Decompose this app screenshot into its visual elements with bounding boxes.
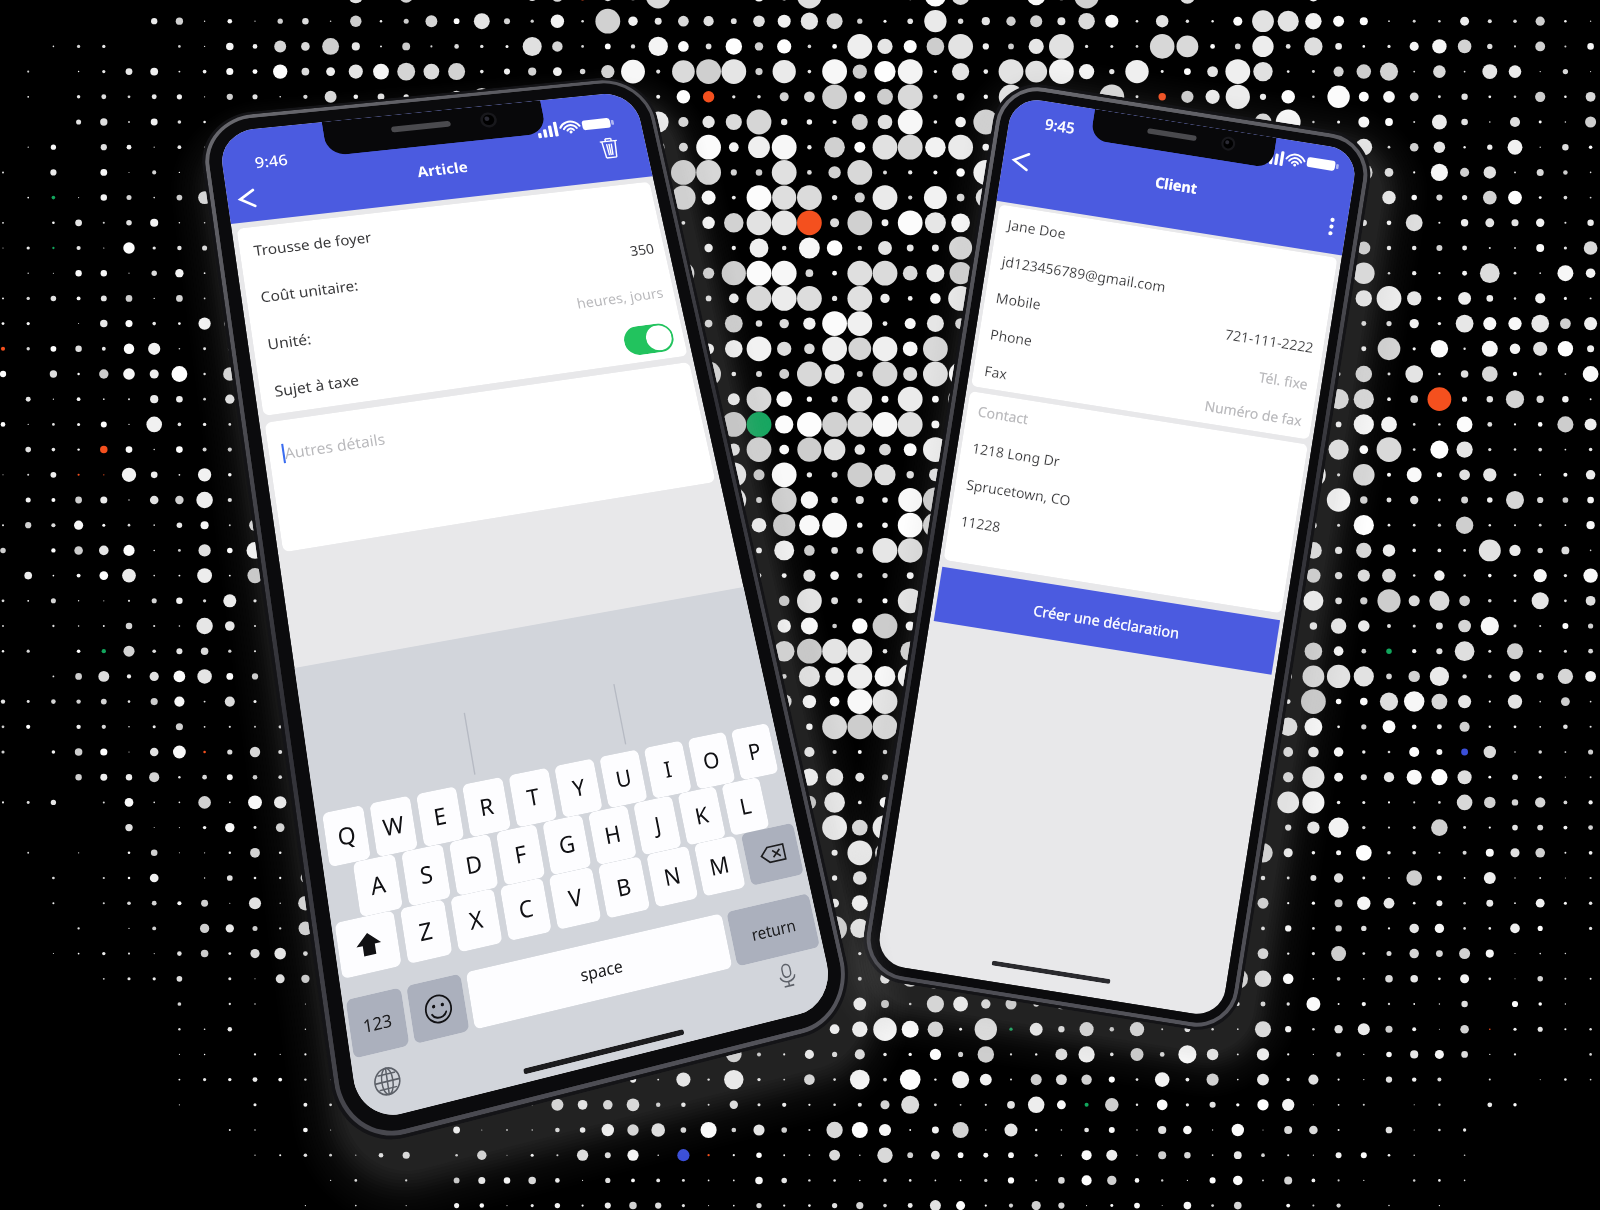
button[interactable]: O <box>687 732 736 790</box>
button[interactable]: Back <box>225 179 269 219</box>
staticText: Numéro de fax <box>1203 396 1304 430</box>
button[interactable]: Delete <box>590 130 630 165</box>
staticText: W <box>380 808 407 844</box>
button[interactable]: E <box>416 786 464 847</box>
staticText: Z <box>417 914 436 949</box>
staticText: Article <box>415 156 470 181</box>
button[interactable]: U <box>599 749 648 808</box>
staticText: A <box>368 867 388 903</box>
staticText: H <box>602 818 624 852</box>
staticText: G <box>556 827 578 862</box>
button[interactable]: L <box>721 777 770 836</box>
button[interactable]: Change keyboard <box>365 1057 409 1106</box>
staticText: Autres détails <box>283 428 387 463</box>
button[interactable]: T <box>508 767 557 828</box>
staticText: V <box>566 881 585 915</box>
staticText: X <box>467 902 486 938</box>
staticText: Sprucetown, CO <box>965 475 1073 510</box>
staticText: Client <box>1154 171 1199 198</box>
button[interactable]: R <box>462 777 511 838</box>
staticText: space <box>578 954 625 986</box>
staticText: Fax <box>983 361 1009 383</box>
staticText: U <box>613 762 635 795</box>
button[interactable]: V <box>548 867 601 930</box>
button[interactable]: W <box>369 795 418 857</box>
button[interactable]: B <box>598 856 650 919</box>
staticText: 9:46 <box>253 149 289 173</box>
staticText: 123 <box>361 1008 394 1038</box>
button[interactable]: G <box>542 814 592 875</box>
staticText: E <box>431 800 449 834</box>
staticText: F <box>512 838 529 871</box>
button[interactable]: Back <box>1000 141 1041 181</box>
staticText: Unité: <box>266 328 313 353</box>
button[interactable]: X <box>450 888 503 953</box>
staticText: Mobile <box>995 288 1042 314</box>
staticText: Contact <box>977 401 1030 428</box>
button[interactable]: 123 <box>345 987 409 1059</box>
button[interactable]: J <box>633 795 682 855</box>
staticText: Trousse de foyer <box>252 227 373 260</box>
staticText: 350 <box>628 238 656 259</box>
staticText: 11228 <box>959 511 1003 536</box>
button[interactable]: I <box>644 740 692 799</box>
button[interactable]: Z <box>400 899 453 964</box>
staticText: Q <box>335 818 359 854</box>
staticText: Sujet à taxe <box>273 369 361 401</box>
staticText: Coût unitaire: <box>259 275 360 306</box>
staticText: J <box>652 809 664 841</box>
button[interactable]: More options <box>1315 208 1348 246</box>
button[interactable]: Créer une déclaration <box>934 567 1280 675</box>
staticText: 9:45 <box>1043 113 1076 138</box>
staticText: heures, jours <box>575 282 666 312</box>
staticText: D <box>463 847 485 882</box>
button[interactable]: Q <box>322 805 371 867</box>
staticText: C <box>516 891 536 927</box>
staticText: T <box>524 781 542 814</box>
button[interactable]: K <box>677 786 726 846</box>
button[interactable]: Taxable toggle <box>621 322 676 357</box>
staticText: jd123456789@gmail.com <box>1000 251 1167 296</box>
staticText: Tél. fixe <box>1258 367 1310 394</box>
button[interactable]: Dictate <box>768 954 807 997</box>
button[interactable]: S <box>401 844 451 907</box>
staticText: return <box>749 913 798 945</box>
staticText: Phone <box>989 324 1034 350</box>
button[interactable]: return <box>726 893 820 967</box>
staticText: R <box>477 790 497 824</box>
button[interactable]: F <box>496 824 545 886</box>
button[interactable]: Y <box>554 758 603 818</box>
staticText: M <box>707 848 733 883</box>
button[interactable]: A <box>353 854 403 917</box>
staticText: Y <box>570 771 588 804</box>
staticText: B <box>614 870 634 904</box>
staticText: Créer une déclaration <box>1032 600 1181 643</box>
button[interactable]: space <box>466 913 732 1030</box>
button[interactable]: C <box>500 877 552 941</box>
staticText: I <box>661 754 675 785</box>
staticText: 1218 Long Dr <box>971 438 1062 471</box>
staticText: Jane Doe <box>1006 215 1067 243</box>
button[interactable]: P <box>731 723 779 780</box>
staticText: O <box>700 744 723 777</box>
staticText: 721-111-2222 <box>1224 324 1316 357</box>
staticText: K <box>692 799 711 832</box>
button[interactable]: Shift <box>334 910 402 979</box>
button[interactable]: Emoji <box>406 973 470 1044</box>
staticText: P <box>745 735 764 768</box>
button[interactable]: H <box>588 805 637 865</box>
staticText: N <box>661 859 683 894</box>
button[interactable]: N <box>646 846 698 908</box>
staticText: L <box>737 790 755 822</box>
staticText: S <box>418 857 436 892</box>
button[interactable]: D <box>449 834 499 896</box>
button[interactable]: Backspace <box>741 823 804 886</box>
button[interactable]: M <box>694 835 746 897</box>
